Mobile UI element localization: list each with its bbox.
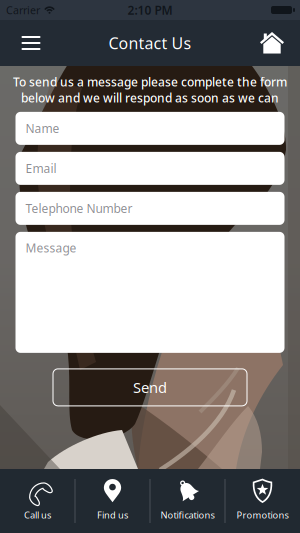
button[interactable]: Promotions xyxy=(225,469,300,533)
button[interactable]: Home xyxy=(253,24,291,62)
staticText: 2:10 PM xyxy=(127,2,172,18)
staticText: To send us a message please complete the… xyxy=(13,74,287,90)
button[interactable]: Call us xyxy=(0,469,75,533)
staticText: Call us xyxy=(24,509,51,521)
staticText: below and we will respond as soon as we … xyxy=(21,90,279,106)
button[interactable]: Find us xyxy=(75,469,150,533)
staticText: Notifications xyxy=(160,509,214,521)
staticText: Find us xyxy=(97,509,128,521)
staticText: Message xyxy=(25,240,76,256)
button[interactable]: Menu xyxy=(12,24,50,62)
button[interactable]: Send xyxy=(53,369,247,406)
staticText: Telephone Number xyxy=(25,200,132,216)
staticText: Promotions xyxy=(236,509,288,521)
button[interactable]: Notifications xyxy=(150,469,225,533)
staticText: Carrier xyxy=(6,3,40,17)
staticText: Email xyxy=(25,160,56,176)
staticText: Send xyxy=(133,378,167,397)
staticText: Name xyxy=(25,120,59,136)
staticText: Contact Us xyxy=(108,32,191,54)
